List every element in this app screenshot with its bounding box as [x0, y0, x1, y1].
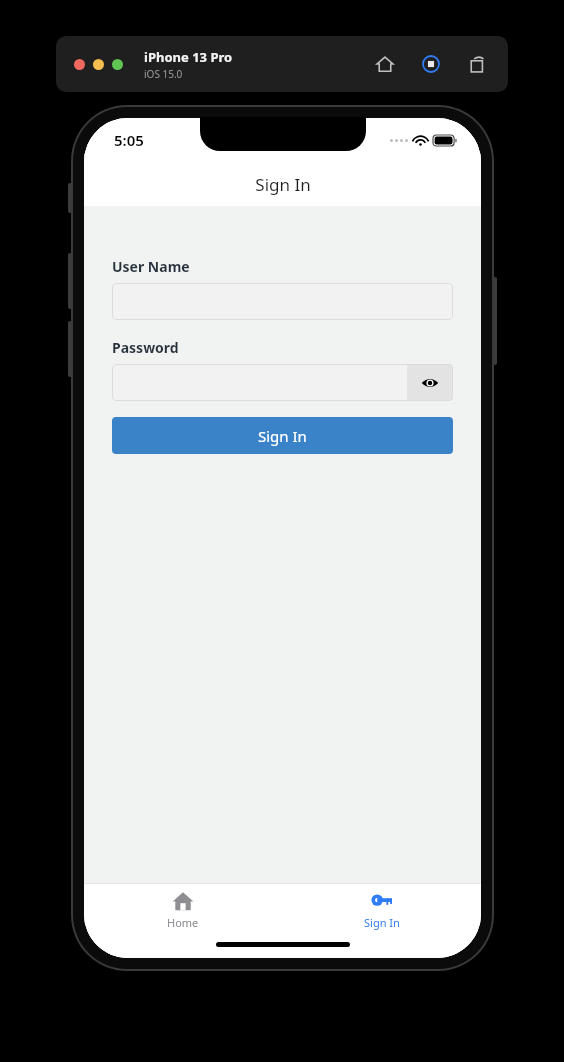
staticText: Sign In	[258, 426, 307, 446]
staticText: Sign In	[255, 173, 311, 196]
button[interactable]: Sign In	[282, 884, 481, 936]
button[interactable]: Rotate	[466, 53, 488, 75]
button[interactable]: Home	[84, 884, 282, 936]
staticText: Password	[112, 338, 179, 357]
staticText: Home	[167, 915, 199, 930]
staticText: Sign In	[364, 915, 400, 930]
staticText: User Name	[112, 257, 190, 276]
button[interactable]	[112, 364, 407, 401]
button[interactable]: Record	[420, 53, 442, 75]
staticText: iPhone 13 Pro	[144, 48, 233, 66]
staticText: 5:05	[114, 130, 144, 150]
button[interactable]: Home	[374, 53, 396, 75]
button[interactable]	[112, 283, 453, 320]
button[interactable]: Sign In	[112, 417, 453, 454]
button[interactable]: Show password	[407, 364, 453, 401]
staticText: iOS 15.0	[144, 67, 183, 81]
